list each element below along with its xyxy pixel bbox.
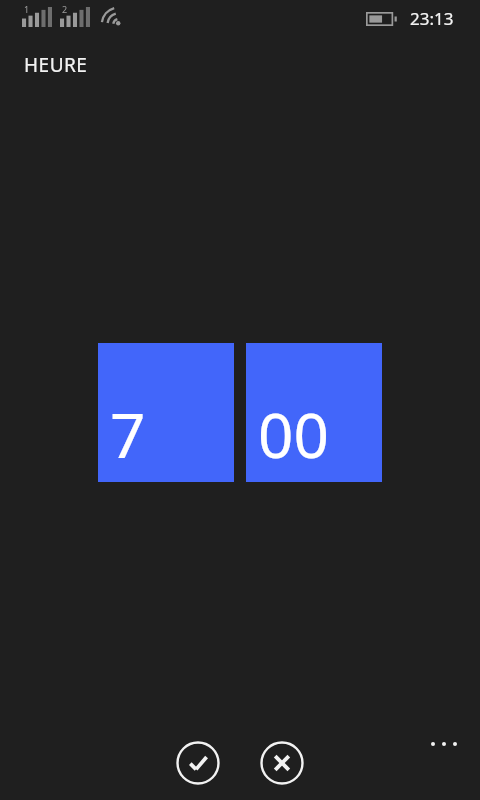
button[interactable]: Accept bbox=[174, 739, 222, 787]
button[interactable]: 00 bbox=[246, 343, 382, 482]
button[interactable]: More options bbox=[418, 723, 470, 765]
staticText: 23:13 bbox=[410, 7, 454, 30]
staticText: 1 bbox=[24, 3, 30, 15]
staticText: 00 bbox=[258, 392, 329, 476]
staticText: 2 bbox=[62, 3, 68, 15]
button[interactable]: 7 bbox=[98, 343, 234, 482]
staticText: HEURE bbox=[24, 52, 88, 78]
staticText: 7 bbox=[110, 392, 146, 476]
button[interactable]: Cancel bbox=[258, 739, 306, 787]
